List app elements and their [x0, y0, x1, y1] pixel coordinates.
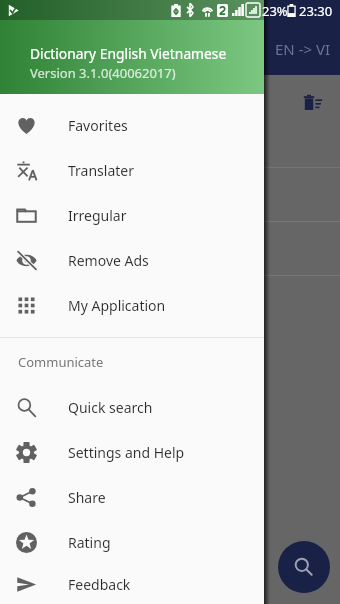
button[interactable]: Settings and Help — [0, 430, 264, 475]
staticText: Dictionary English Vietnamese — [30, 44, 227, 63]
staticText: 23% — [262, 2, 288, 20]
button[interactable]: My Application — [0, 283, 264, 328]
staticText: Communicate — [18, 353, 104, 371]
staticText: Share — [68, 488, 106, 507]
button[interactable]: Quick search — [0, 385, 264, 430]
button[interactable]: Favorites — [0, 103, 264, 148]
staticText: Translater — [68, 161, 134, 180]
staticText: Settings and Help — [68, 443, 185, 462]
staticText: My Application — [68, 296, 166, 315]
staticText: Rating — [68, 533, 111, 552]
staticText: Remove Ads — [68, 251, 149, 270]
button[interactable]: Feedback — [0, 565, 264, 604]
staticText: Favorites — [68, 116, 128, 135]
button[interactable]: Irregular — [0, 193, 264, 238]
button[interactable]: Share — [0, 475, 264, 520]
staticText: Quick search — [68, 398, 153, 417]
button[interactable]: Remove Ads — [0, 238, 264, 283]
button[interactable]: Search — [278, 541, 330, 593]
staticText: Irregular — [68, 206, 127, 225]
button[interactable]: Rating — [0, 520, 264, 565]
staticText: EN -> VI — [275, 39, 331, 59]
staticText: Feedback — [68, 575, 131, 594]
button[interactable]: Translater — [0, 148, 264, 193]
staticText: 23:30 — [299, 2, 333, 20]
button[interactable]: Delete history — [298, 88, 328, 118]
staticText: Version 3.1.0(40062017) — [30, 64, 176, 82]
